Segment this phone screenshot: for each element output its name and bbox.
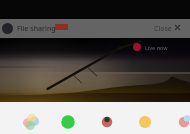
- button[interactable]: Share target 4: [176, 114, 190, 130]
- staticText: Live now: [145, 44, 168, 51]
- button[interactable]: Share target 3: [137, 114, 153, 130]
- button[interactable]: Share target 2: [99, 114, 115, 130]
- button[interactable]: Live now: [133, 43, 168, 51]
- button[interactable]: Close: [154, 24, 172, 34]
- button[interactable]: Dismiss: [174, 24, 181, 31]
- button[interactable]: Account: [2, 23, 13, 34]
- button[interactable]: Share target 0: [23, 114, 39, 130]
- staticText: File sharing: [17, 24, 56, 34]
- button[interactable]: Share target 1: [60, 114, 76, 130]
